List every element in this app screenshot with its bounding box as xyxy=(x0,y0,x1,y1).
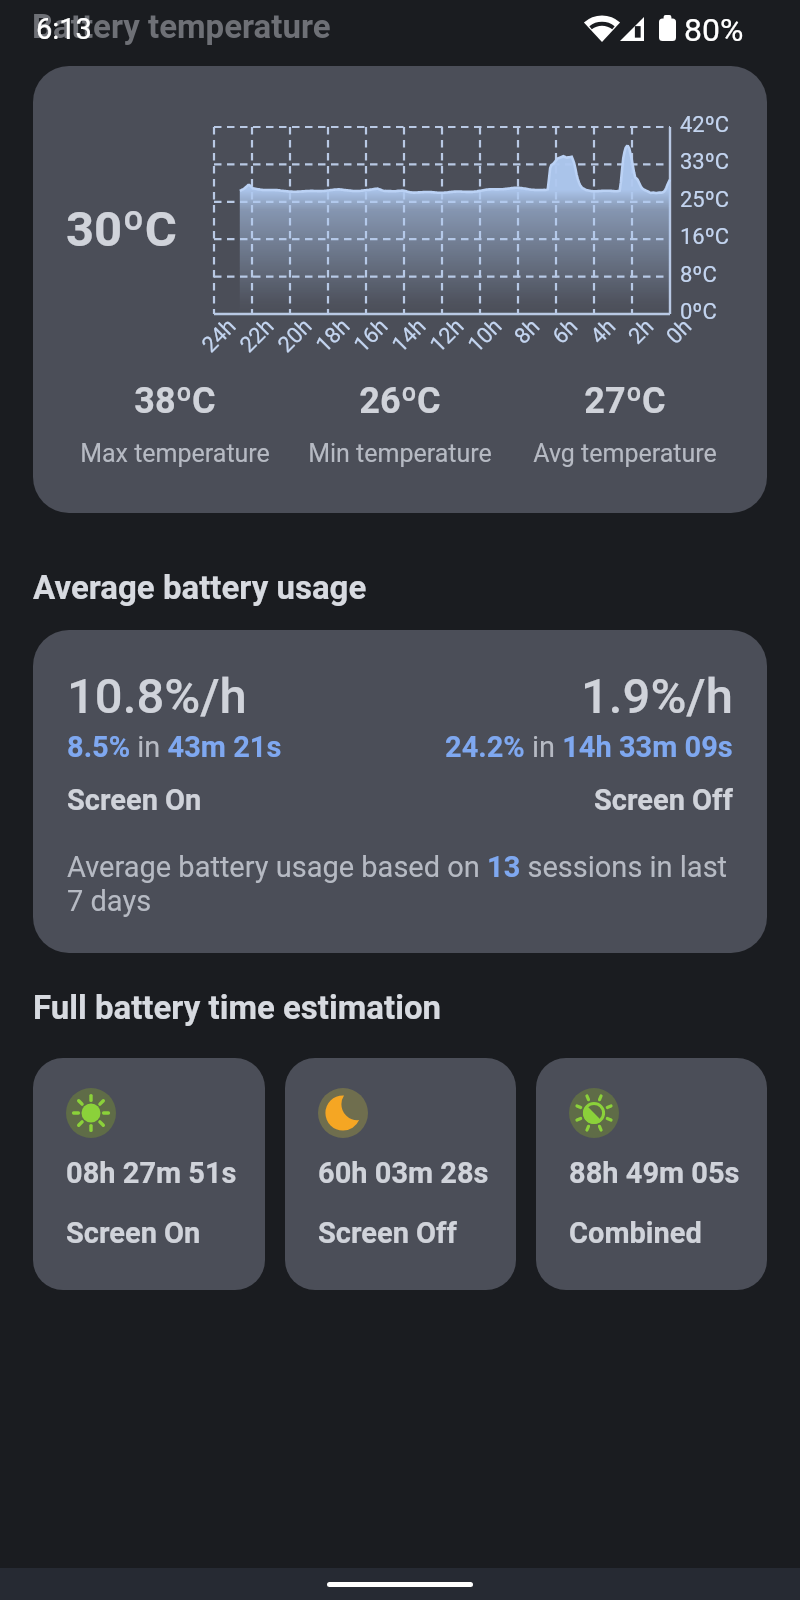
staticText: Full battery time estimation xyxy=(33,988,442,1027)
staticText: Screen Off xyxy=(318,1216,457,1250)
staticText: Avg temperature xyxy=(533,439,717,468)
button[interactable]: 60h 03m 28s xyxy=(285,1058,516,1290)
staticText: 60h 03m 28s xyxy=(318,1156,489,1190)
staticText: 25ºC xyxy=(680,187,730,213)
staticText: 20h xyxy=(273,313,317,358)
staticText: 8.5% in 43m 21s xyxy=(67,730,282,764)
staticText: 22h xyxy=(235,313,279,358)
staticText: Max temperature xyxy=(80,439,270,468)
staticText: 16h xyxy=(349,313,393,358)
staticText: 30ºC xyxy=(66,201,177,258)
staticText: 14h xyxy=(387,313,431,358)
staticText: Combined xyxy=(569,1216,702,1250)
staticText: 88h 49m 05s xyxy=(569,1156,740,1190)
staticText: Screen On xyxy=(66,1216,201,1250)
staticText: 6:13 xyxy=(36,12,92,46)
staticText: Average battery usage based on 13 sessio… xyxy=(67,850,728,918)
staticText: 27ºC xyxy=(584,380,666,422)
staticText: 4h xyxy=(585,313,621,350)
staticText: 1.9%/h xyxy=(581,668,733,725)
staticText: 42ºC xyxy=(680,112,730,138)
staticText: Screen On xyxy=(67,783,202,817)
staticText: 24.2% in 14h 33m 09s xyxy=(445,730,733,764)
staticText: 2h xyxy=(623,313,659,350)
staticText: Min temperature xyxy=(308,439,492,468)
staticText: 24h xyxy=(197,313,241,358)
staticText: Screen Off xyxy=(594,783,733,817)
staticText: 8ºC xyxy=(680,262,717,288)
staticText: Average battery usage xyxy=(33,568,367,607)
button[interactable]: 88h 49m 05s xyxy=(536,1058,767,1290)
button[interactable]: 10.8%/h xyxy=(33,630,767,953)
staticText: 26ºC xyxy=(359,380,441,422)
staticText: 18h xyxy=(311,313,355,358)
staticText: 0ºC xyxy=(680,299,717,325)
staticText: 08h 27m 51s xyxy=(66,1156,237,1190)
button[interactable]: 08h 27m 51s xyxy=(33,1058,265,1290)
button[interactable]: 30ºC xyxy=(33,66,767,513)
staticText: 10h xyxy=(463,313,507,358)
staticText: Battery temperature xyxy=(32,7,331,46)
staticText: 6h xyxy=(547,313,583,350)
staticText: 80% xyxy=(684,11,744,49)
staticText: 0h xyxy=(661,313,697,350)
staticText: 38ºC xyxy=(134,380,216,422)
staticText: 16ºC xyxy=(680,224,730,250)
staticText: 33ºC xyxy=(680,149,730,175)
staticText: 12h xyxy=(425,313,469,358)
staticText: 8h xyxy=(509,313,545,350)
staticText: 10.8%/h xyxy=(67,668,247,725)
